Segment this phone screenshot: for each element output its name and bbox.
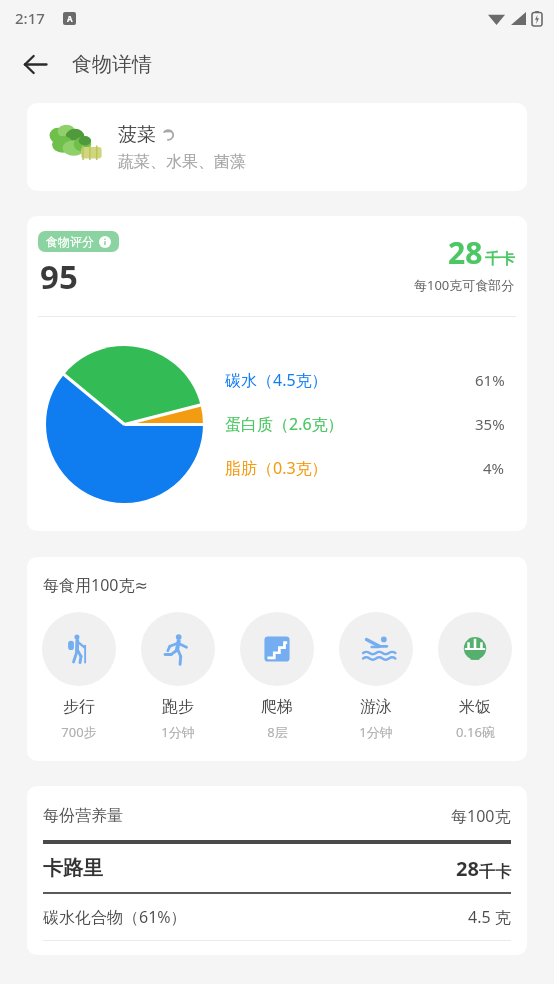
staticText: 28 [448, 232, 483, 273]
staticText: 爬梯 [261, 697, 293, 717]
staticText: 0.16碗 [456, 723, 495, 741]
staticText: 每食用100克≈ [43, 574, 148, 596]
button[interactable]: 跑步 [136, 612, 220, 741]
staticText: 1分钟 [359, 723, 393, 741]
staticText: 碳水化合物（61%） [43, 906, 187, 928]
button[interactable]: 步行 [37, 612, 121, 741]
staticText: 28 [456, 855, 479, 882]
staticText: 35% [475, 414, 505, 434]
staticText: 61% [475, 370, 505, 390]
staticText: 蛋白质（2.6克） [225, 413, 344, 435]
staticText: 4% [483, 458, 505, 478]
button[interactable]: 食物评分 [38, 231, 119, 252]
staticText: 步行 [63, 697, 95, 717]
staticText: 每100克可食部分 [414, 276, 515, 294]
staticText: 游泳 [360, 697, 392, 717]
staticText: 700步 [61, 723, 97, 741]
staticText: 碳水（4.5克） [225, 369, 328, 391]
staticText: 千卡 [485, 250, 515, 269]
button[interactable]: 游泳 [334, 612, 418, 741]
staticText: 蔬菜、水果、菌藻 [118, 152, 246, 172]
button[interactable]: Back [14, 43, 56, 85]
button[interactable]: 碳水化合物（61%） [43, 906, 511, 928]
staticText: 1分钟 [161, 723, 195, 741]
staticText: A [67, 13, 73, 24]
button[interactable]: 菠菜 [27, 103, 527, 191]
staticText: 菠菜 [118, 123, 156, 147]
staticText: 米饭 [459, 697, 491, 717]
staticText: 每份营养量 [43, 806, 123, 826]
staticText: 脂肪（0.3克） [225, 457, 328, 479]
staticText: 2:17 [15, 8, 45, 28]
button[interactable]: 米饭 [433, 612, 517, 741]
staticText: 食物详情 [72, 52, 152, 77]
staticText: 跑步 [162, 697, 194, 717]
button[interactable]: 爬梯 [235, 612, 319, 741]
staticText: 4.5 克 [468, 906, 511, 928]
staticText: 卡路里 [43, 856, 103, 881]
staticText: 千卡 [479, 862, 511, 882]
staticText: 每100克 [451, 805, 511, 827]
staticText: 食物评分 [46, 234, 94, 249]
staticText: 8层 [267, 723, 288, 741]
staticText: 95 [40, 254, 78, 299]
button[interactable]: 卡路里 [43, 855, 511, 882]
